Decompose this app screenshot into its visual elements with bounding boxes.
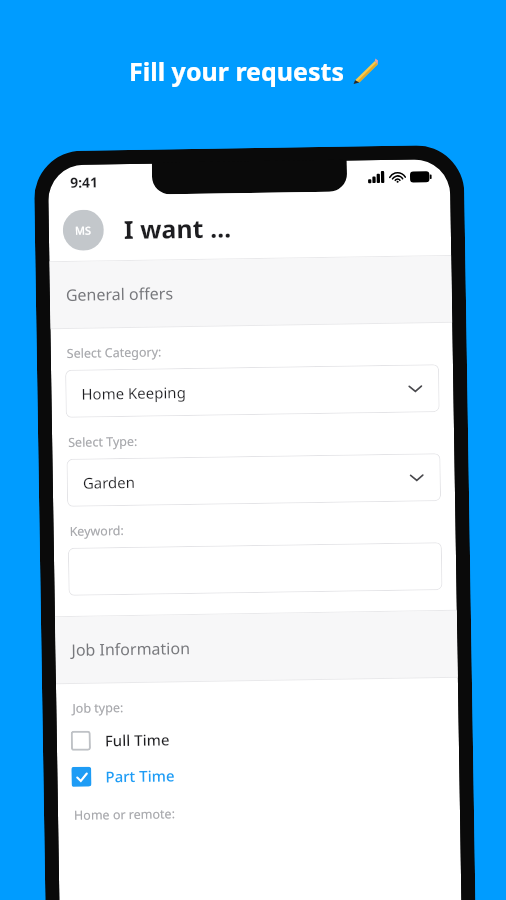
staticText: 9:41 xyxy=(70,172,98,192)
staticText: MS xyxy=(75,222,92,238)
staticText: Fill your requests xyxy=(129,54,344,88)
staticText: Job type: xyxy=(72,699,123,717)
button[interactable]: Full Time xyxy=(71,727,170,753)
staticText: Keyword: xyxy=(69,522,125,540)
staticText: Job Information xyxy=(71,637,190,661)
button[interactable]: Keyword input xyxy=(68,542,442,596)
staticText: General offers xyxy=(66,282,174,306)
staticText: Select Type: xyxy=(68,433,138,451)
staticText: Part Time xyxy=(105,765,176,786)
button[interactable]: Garden xyxy=(66,453,441,507)
staticText: Home or remote: xyxy=(74,805,175,824)
staticText: Select Category: xyxy=(67,343,162,362)
staticText: I want ... xyxy=(123,210,232,246)
button[interactable]: Profile xyxy=(62,209,104,251)
button[interactable]: Home Keeping xyxy=(65,364,440,418)
staticText: Home Keeping xyxy=(81,382,186,404)
button[interactable]: Part Time xyxy=(71,763,176,789)
staticText: Garden xyxy=(83,472,136,493)
staticText: Full Time xyxy=(105,729,170,750)
